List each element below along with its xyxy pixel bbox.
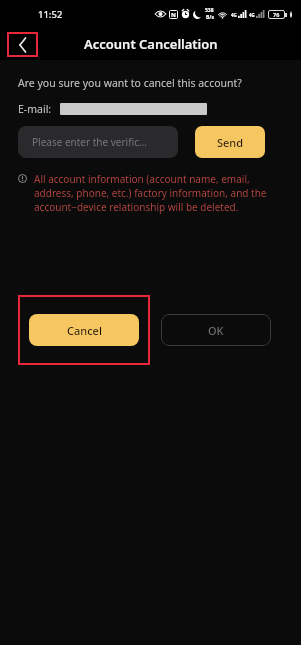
button[interactable]: OK bbox=[161, 314, 271, 346]
staticText: Are you sure you want to cancel this acc… bbox=[18, 76, 242, 90]
staticText: Send bbox=[217, 135, 244, 150]
button[interactable]: Back bbox=[7, 32, 38, 57]
staticText: 538 bbox=[205, 7, 214, 14]
staticText: OK bbox=[208, 323, 224, 338]
staticText: 11:52 bbox=[38, 8, 63, 21]
button[interactable]: Cancel bbox=[29, 314, 139, 346]
staticText: 4G bbox=[249, 12, 255, 18]
staticText: 76 bbox=[273, 11, 280, 18]
staticText: Please enter the verific… bbox=[32, 135, 147, 149]
staticText: 4G bbox=[231, 12, 237, 18]
staticText: E-mail: bbox=[18, 102, 52, 116]
staticText: All account information (account name, e… bbox=[34, 172, 283, 214]
staticText: N bbox=[171, 11, 176, 19]
button[interactable]: Send bbox=[195, 126, 265, 158]
button[interactable]: Please enter the verific… bbox=[18, 126, 178, 158]
staticText: Account Cancellation bbox=[84, 35, 218, 53]
staticText: B/s bbox=[206, 14, 214, 21]
staticText: Cancel bbox=[67, 323, 102, 338]
